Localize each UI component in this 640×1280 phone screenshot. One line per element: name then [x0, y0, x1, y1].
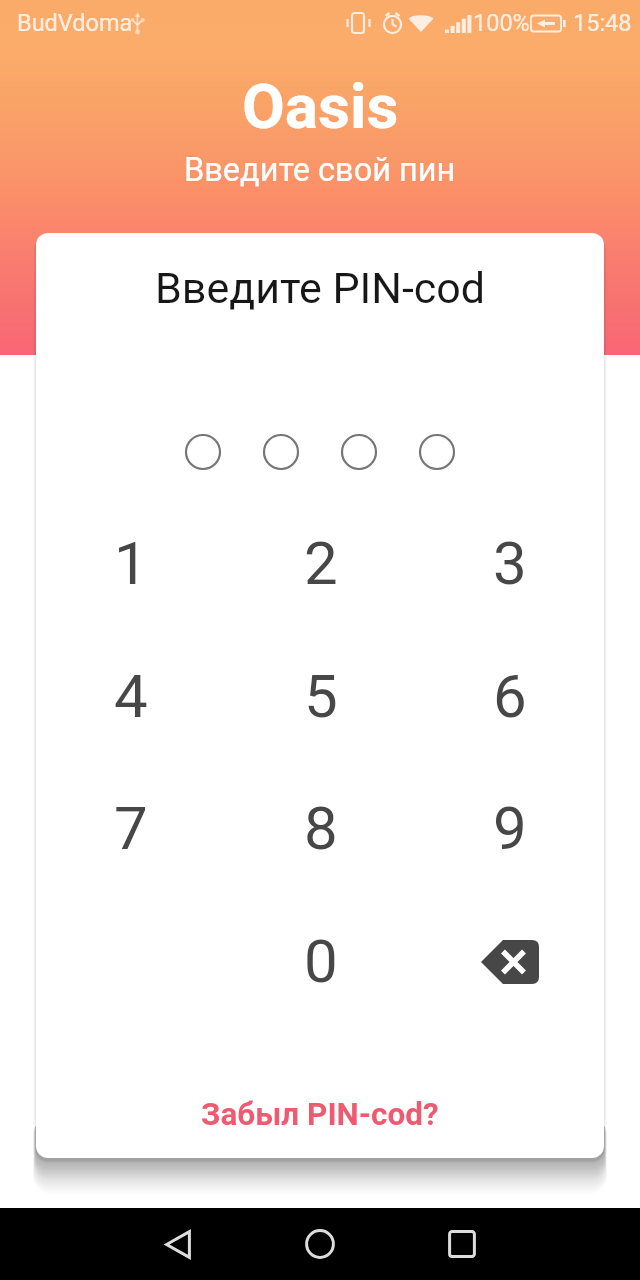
button[interactable]: 5 — [226, 635, 415, 757]
staticText: 0 — [304, 926, 338, 996]
staticText: 3 — [493, 528, 527, 598]
button[interactable]: 7 — [36, 767, 226, 889]
staticText: 7 — [114, 793, 148, 863]
button[interactable]: 1 — [36, 502, 226, 624]
staticText: Введите свой пин — [184, 151, 456, 189]
button[interactable]: 8 — [226, 767, 415, 889]
staticText: 8 — [304, 793, 338, 863]
other: Backspace — [481, 940, 539, 984]
button[interactable]: 9 — [415, 767, 604, 889]
button[interactable]: Backspace — [415, 900, 604, 1022]
staticText: 2 — [304, 528, 338, 598]
staticText: 1 — [114, 528, 148, 598]
staticText: BudVdoma — [17, 9, 133, 37]
staticText: 6 — [493, 661, 527, 731]
staticText: 5 — [304, 661, 338, 731]
staticText: 4 — [114, 661, 148, 731]
button[interactable]: 3 — [415, 502, 604, 624]
button[interactable]: 2 — [226, 502, 415, 624]
staticText: 100% — [473, 9, 530, 37]
button[interactable]: 6 — [415, 635, 604, 757]
staticText: Oasis — [242, 70, 399, 143]
button[interactable]: 0 — [226, 900, 415, 1022]
staticText: 9 — [493, 793, 527, 863]
staticText: Введите PIN-cod — [155, 263, 486, 313]
button[interactable]: Recents — [391, 1208, 533, 1280]
button[interactable]: Back — [107, 1208, 249, 1280]
button[interactable]: 4 — [36, 635, 226, 757]
button[interactable]: Забыл PIN-cod? — [185, 1088, 455, 1141]
staticText: 15:48 — [573, 9, 632, 37]
button[interactable]: Home — [249, 1208, 391, 1280]
staticText: Забыл PIN-cod? — [201, 1096, 439, 1133]
